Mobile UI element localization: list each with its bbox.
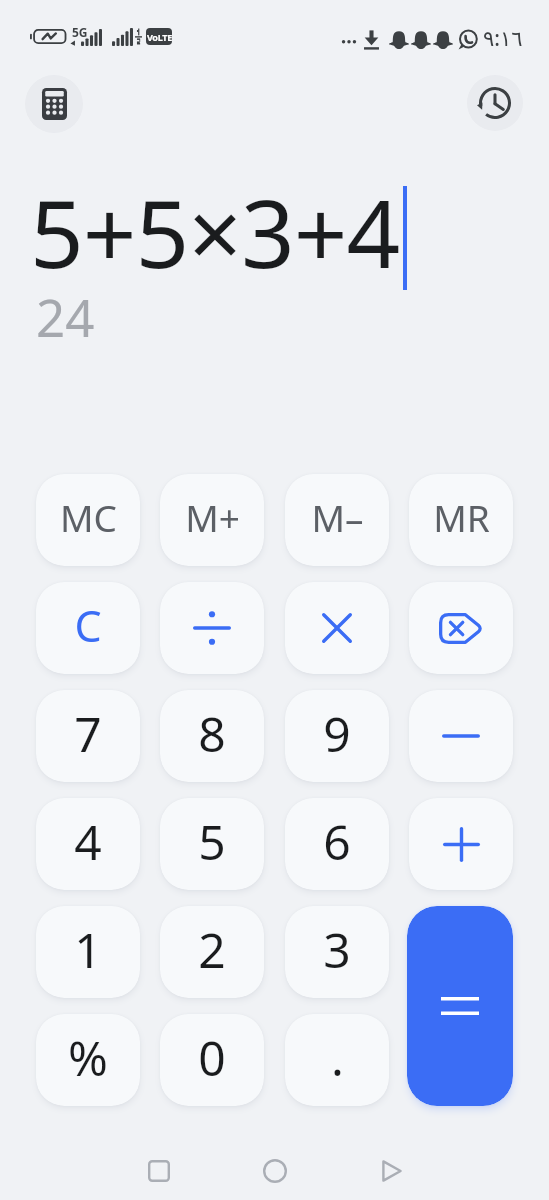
button[interactable]: 4: [36, 798, 140, 890]
staticText: 3: [323, 917, 351, 982]
staticText: 8: [198, 701, 226, 766]
button[interactable]: 1: [36, 906, 140, 998]
staticText: M+: [185, 492, 240, 542]
button[interactable]: 2: [160, 906, 264, 998]
staticText: 5G: [72, 24, 88, 40]
button[interactable]: 3: [285, 906, 389, 998]
button[interactable]: MC: [36, 474, 140, 566]
staticText: 24: [36, 282, 95, 351]
staticText: VoLTE: [147, 31, 172, 43]
staticText: 7: [74, 701, 102, 766]
staticText: ٩:١٦: [483, 24, 523, 53]
button[interactable]: Divide: [160, 582, 264, 674]
staticText: %: [68, 1025, 108, 1090]
button[interactable]: Plus: [409, 798, 513, 890]
staticText: MR: [433, 492, 490, 542]
button[interactable]: 7: [36, 690, 140, 782]
button[interactable]: .: [285, 1014, 389, 1106]
staticText: 9: [323, 701, 351, 766]
button[interactable]: Recents: [130, 1142, 188, 1200]
staticText: M–: [311, 492, 364, 542]
button[interactable]: 0: [160, 1014, 264, 1106]
button[interactable]: Minus: [409, 690, 513, 782]
button[interactable]: Calculator keypad: [25, 75, 83, 133]
button[interactable]: Home: [246, 1142, 304, 1200]
button[interactable]: M–: [285, 474, 389, 566]
staticText: 5: [198, 809, 226, 874]
staticText: C: [74, 596, 102, 655]
button[interactable]: MR: [409, 474, 513, 566]
staticText: MC: [60, 492, 117, 542]
staticText: 0: [198, 1025, 226, 1090]
staticText: 4: [74, 809, 102, 874]
staticText: 1: [74, 917, 102, 982]
button[interactable]: Back: [363, 1142, 421, 1200]
button[interactable]: History: [467, 75, 523, 131]
staticText: 2: [198, 917, 226, 982]
staticText: 6: [323, 809, 351, 874]
button[interactable]: 5: [160, 798, 264, 890]
button[interactable]: C: [36, 582, 140, 674]
staticText: .: [331, 1025, 344, 1090]
staticText: 5+5×3+4: [30, 168, 400, 296]
button[interactable]: Backspace: [409, 582, 513, 674]
button[interactable]: 6: [285, 798, 389, 890]
button[interactable]: %: [36, 1014, 140, 1106]
button[interactable]: Multiply: [285, 582, 389, 674]
button[interactable]: M+: [160, 474, 264, 566]
button[interactable]: 9: [285, 690, 389, 782]
button[interactable]: Equals: [407, 906, 513, 1106]
button[interactable]: 8: [160, 690, 264, 782]
